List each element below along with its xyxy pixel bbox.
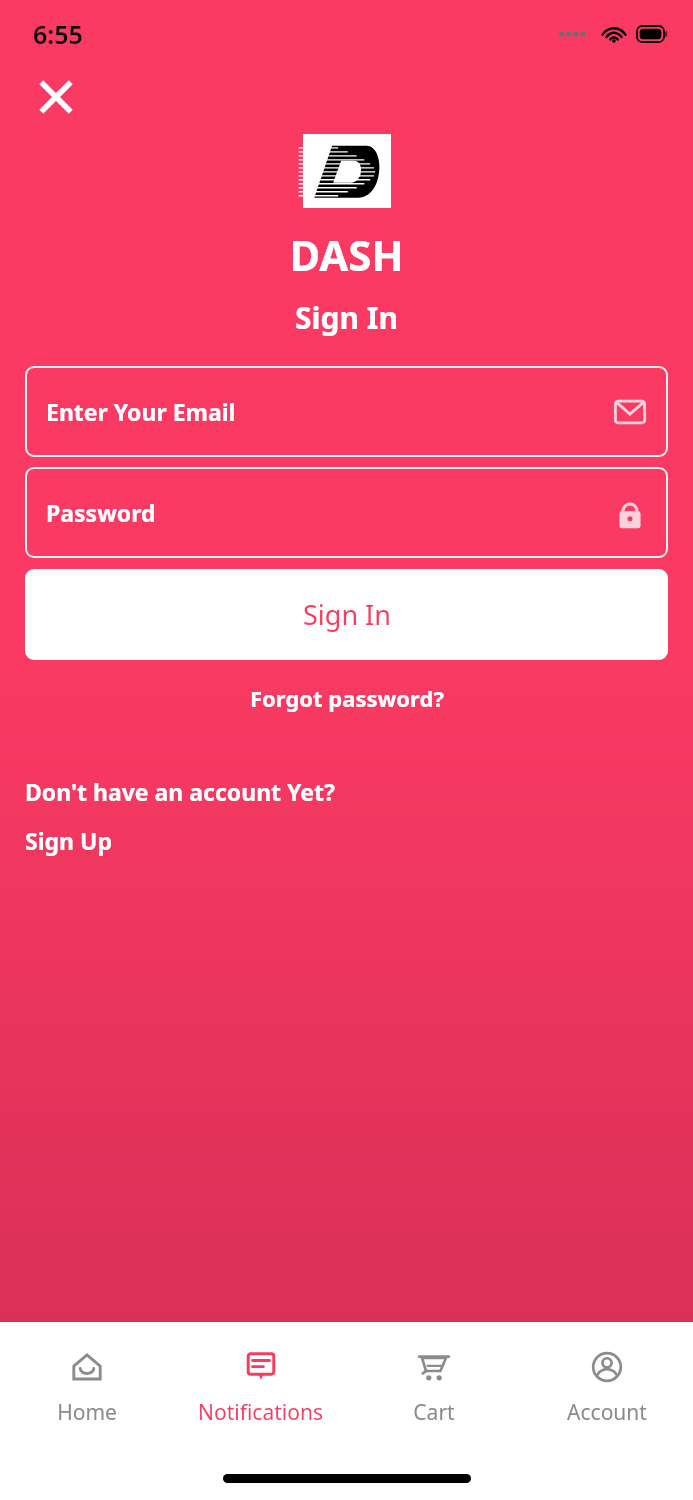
button[interactable]: Sign In [25, 569, 668, 660]
button[interactable]: Password [25, 467, 668, 558]
staticText: Home [57, 1398, 117, 1427]
staticText: Sign Up [25, 825, 112, 856]
staticText: 6:55 [33, 17, 83, 51]
staticText: Notifications [198, 1398, 323, 1427]
button[interactable]: Close [33, 74, 79, 120]
button[interactable]: Forgot password? [242, 679, 452, 717]
staticText: DASH [289, 226, 404, 283]
staticText: Enter Your Email [46, 396, 613, 427]
button[interactable]: Notifications [174, 1322, 347, 1452]
staticText: Cart [413, 1398, 455, 1427]
staticText: Sign In [295, 297, 398, 338]
staticText: Password [46, 497, 613, 528]
staticText: Forgot password? [250, 683, 444, 713]
button[interactable]: Enter Your Email [25, 366, 668, 457]
staticText: Don't have an account Yet? [25, 776, 335, 807]
button[interactable]: Sign Up [25, 825, 112, 856]
staticText: Sign In [303, 596, 391, 633]
button[interactable]: Home [0, 1322, 174, 1452]
staticText: Account [567, 1398, 647, 1427]
button[interactable]: Cart [347, 1322, 520, 1452]
button[interactable]: Account [520, 1322, 693, 1452]
